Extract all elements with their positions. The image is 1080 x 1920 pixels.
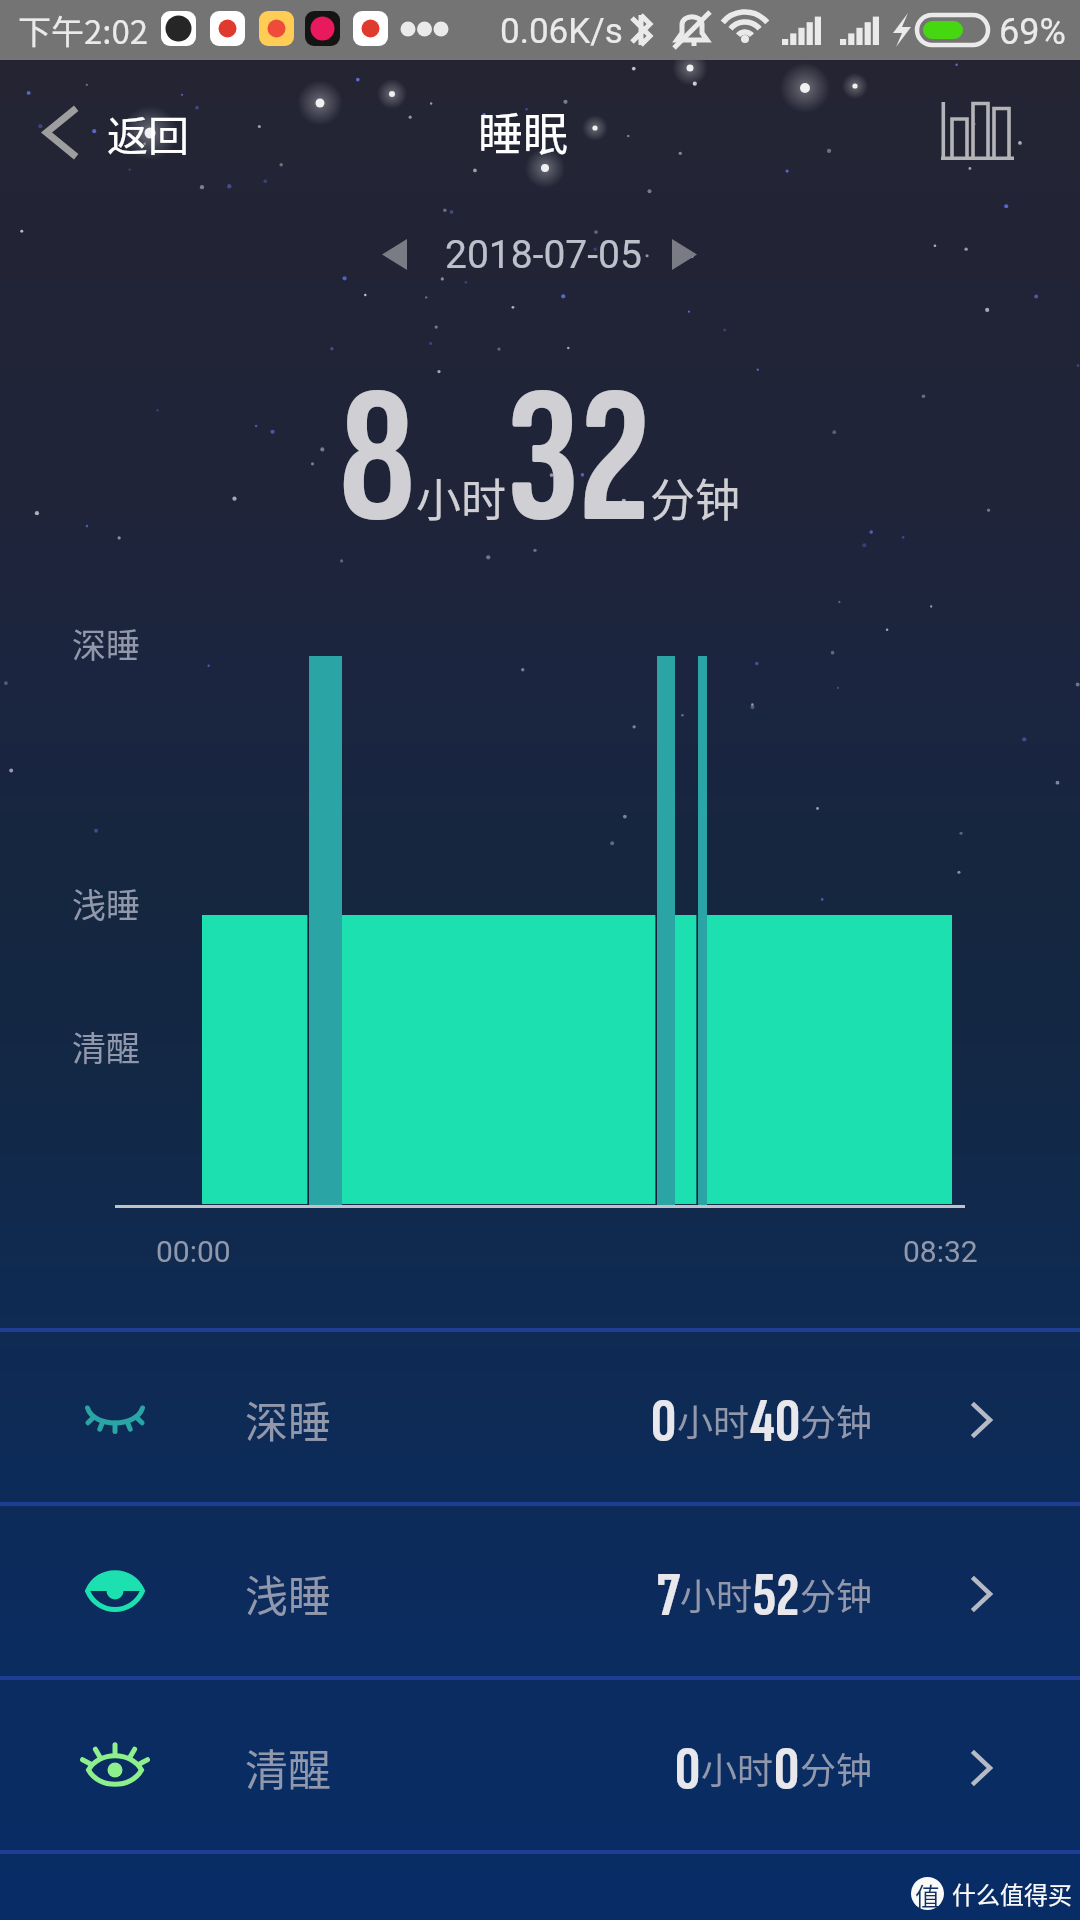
button[interactable]: 清醒 xyxy=(0,1680,1080,1850)
staticText: 8 xyxy=(339,344,416,577)
button[interactable]: Statistics xyxy=(911,72,1044,190)
staticText: 深睡 xyxy=(245,1388,331,1450)
staticText: 08:32 xyxy=(903,1234,978,1269)
button[interactable]: Previous day xyxy=(358,215,431,294)
staticText: 分钟 xyxy=(650,465,741,530)
button[interactable]: 深睡 xyxy=(0,1332,1080,1502)
staticText: 值 xyxy=(915,1877,941,1910)
staticText: 清醒 xyxy=(245,1736,331,1798)
button[interactable]: Next day xyxy=(648,215,721,294)
staticText: 7 xyxy=(657,1558,680,1634)
staticText: 分钟 xyxy=(800,1742,873,1794)
staticText: 浅睡 xyxy=(72,879,140,928)
staticText: 小时 xyxy=(416,465,507,530)
staticText: 分钟 xyxy=(800,1568,873,1620)
button[interactable]: 浅睡 xyxy=(0,1506,1080,1676)
staticText: 分钟 xyxy=(800,1394,873,1446)
staticText: 2018-07-05 xyxy=(445,232,642,278)
staticText: 0 xyxy=(651,1384,677,1460)
staticText: 0 xyxy=(774,1732,800,1808)
staticText: 52 xyxy=(753,1558,800,1634)
staticText: 返回 xyxy=(107,103,189,162)
staticText: 小时 xyxy=(677,1394,750,1446)
staticText: 深睡 xyxy=(72,619,140,668)
staticText: 小时 xyxy=(680,1568,753,1620)
button[interactable]: 返回 xyxy=(20,91,213,174)
staticText: 下午2:02 xyxy=(18,6,149,54)
staticText: 浅睡 xyxy=(245,1562,331,1624)
staticText: 小时 xyxy=(701,1742,774,1794)
staticText: 0.06K/s xyxy=(500,11,623,52)
staticText: 00:00 xyxy=(156,1234,231,1269)
staticText: 40 xyxy=(750,1384,800,1460)
staticText: 0 xyxy=(675,1732,701,1808)
staticText: 69% xyxy=(999,11,1066,53)
staticText: 清醒 xyxy=(72,1022,140,1071)
staticText: 32 xyxy=(507,344,650,577)
staticText: 睡眠 xyxy=(478,99,569,164)
staticText: 什么值得买 xyxy=(952,1876,1072,1911)
